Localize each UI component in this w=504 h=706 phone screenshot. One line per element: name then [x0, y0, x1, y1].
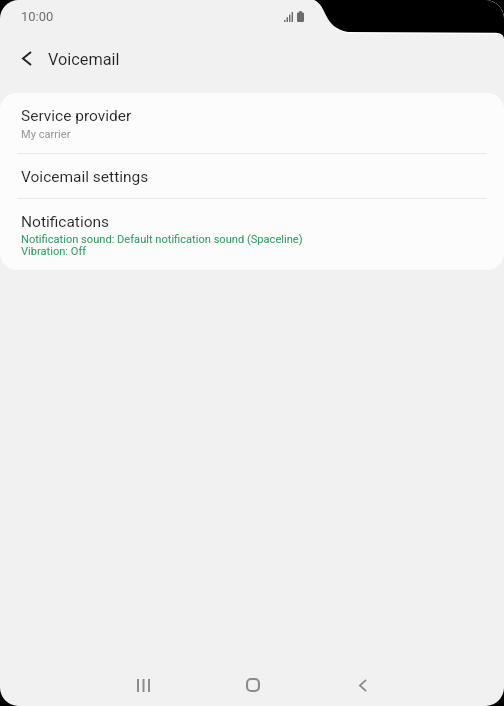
button[interactable]: Voicemail settings [0, 154, 504, 199]
staticText: Service provider [21, 107, 132, 125]
button[interactable]: Navigate up [13, 44, 41, 72]
staticText: 10:00 [21, 9, 54, 24]
button[interactable]: Back [328, 663, 398, 706]
button[interactable]: Home [218, 663, 288, 706]
staticText: Vibration: Off [21, 245, 87, 258]
button[interactable]: Service provider [0, 93, 504, 154]
staticText: My carrier [21, 128, 71, 141]
staticText: Voicemail settings [21, 168, 149, 186]
staticText: Notification sound: Default notification… [21, 233, 303, 246]
staticText: Notifications [21, 213, 110, 231]
button[interactable]: Notifications [0, 199, 504, 270]
staticText: Voicemail [48, 50, 120, 69]
button[interactable]: Recent apps [108, 663, 178, 706]
